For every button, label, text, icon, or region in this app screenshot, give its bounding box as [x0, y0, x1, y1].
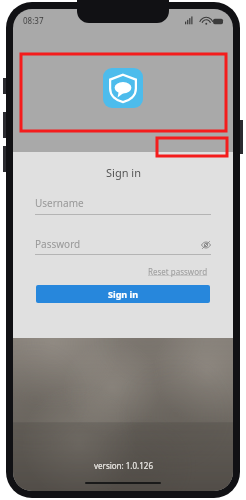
button[interactable]: Reset password: [148, 266, 208, 277]
button[interactable]: Username: [35, 196, 211, 215]
button[interactable]: Show password: [200, 239, 211, 250]
staticText: Reset password: [148, 266, 208, 277]
staticText: Sign in: [106, 165, 141, 180]
staticText: 08:37: [23, 15, 44, 26]
staticText: Username: [35, 196, 84, 210]
staticText: Password: [35, 237, 81, 251]
button[interactable]: Sign in: [36, 285, 210, 303]
button[interactable]: Password: [35, 237, 211, 255]
staticText: Sign in: [108, 288, 139, 300]
staticText: version: 1.0.126: [94, 460, 153, 471]
